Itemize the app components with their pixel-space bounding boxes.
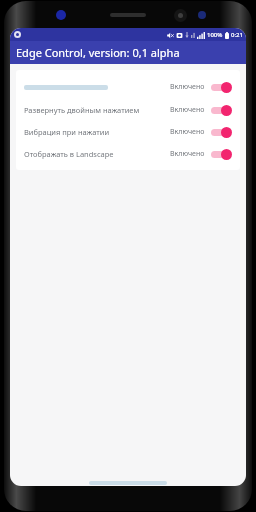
- staticText: Edge Control, version: 0,1 alpha: [16, 45, 180, 60]
- staticText: Развернуть двойным нажатием: [24, 105, 170, 115]
- button[interactable]: Вибрация при нажатии: [16, 121, 240, 143]
- button[interactable]: Toggle setting: [210, 81, 232, 93]
- staticText: Вибрация при нажатии: [24, 127, 170, 137]
- button[interactable]: Toggle setting: [210, 104, 232, 116]
- staticText: Отображать в Landscape: [24, 149, 170, 159]
- button[interactable]: Включено: [16, 75, 240, 99]
- button[interactable]: Toggle setting: [210, 148, 232, 160]
- button[interactable]: Развернуть двойным нажатием: [16, 99, 240, 121]
- staticText: Включено: [170, 82, 205, 92]
- button[interactable]: Отображать в Landscape: [16, 143, 240, 165]
- staticText: Включено: [170, 149, 205, 159]
- staticText: 100%: [207, 31, 223, 39]
- staticText: Включено: [170, 105, 205, 115]
- button[interactable]: Toggle setting: [210, 126, 232, 138]
- staticText: 0:21: [231, 31, 243, 39]
- staticText: Включено: [170, 127, 205, 137]
